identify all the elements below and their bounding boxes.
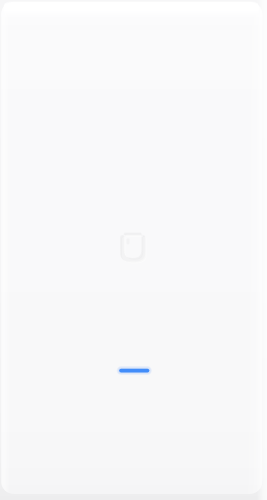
button[interactable]: UniFi access point product photo xyxy=(0,0,267,500)
